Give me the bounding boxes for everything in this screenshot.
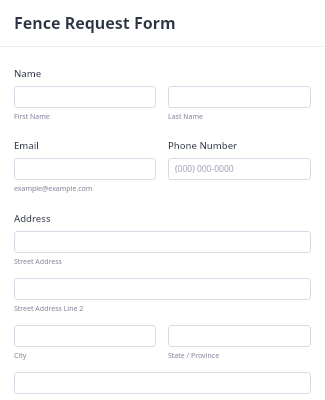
staticText: State / Province [168,351,220,361]
button[interactable]: Phone Number [168,158,311,180]
button[interactable]: Street Address [14,231,311,253]
staticText: example@example.com [14,184,93,194]
staticText: Name [14,67,42,80]
staticText: (000) 000-0000 [175,163,234,175]
button[interactable]: Street Address Line 2 [14,278,311,300]
button[interactable]: Last Name [168,86,311,108]
staticText: Last Name [168,112,204,122]
button[interactable]: First Name [14,86,156,108]
button[interactable]: Postal / Zip Code [14,372,311,394]
button[interactable]: State / Province [168,325,311,347]
staticText: Phone Number [168,139,238,152]
staticText: Email [14,139,39,152]
staticText: Street Address Line 2 [14,304,84,314]
staticText: City [14,351,27,361]
staticText: Fence Request Form [14,12,176,34]
button[interactable]: City [14,325,156,347]
button[interactable]: Email [14,158,156,180]
staticText: Address [14,212,51,225]
staticText: Street Address [14,257,62,267]
staticText: First Name [14,112,50,122]
